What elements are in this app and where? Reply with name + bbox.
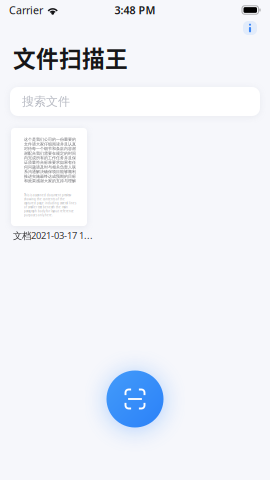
- button[interactable]: Scan document: [91, 355, 179, 443]
- staticText: 搜索文件: [22, 94, 70, 109]
- staticText: This is a scanned document preview showi…: [24, 193, 76, 217]
- staticText: 3:48 PM: [114, 3, 155, 17]
- staticText: 文档2021-03-17 1...: [13, 229, 93, 242]
- staticText: 这个是我们公司的一份重要的文件请大家仔细阅读并且认真对待每一个细节和条款内容谢谢…: [24, 137, 76, 183]
- button[interactable]: 这个是我们公司的一份重要的文件请大家仔细阅读并且认真对待每一个细节和条款内容谢谢…: [11, 128, 95, 241]
- button[interactable]: Info: [238, 17, 262, 39]
- staticText: Carrier: [9, 3, 43, 17]
- staticText: 文件扫描王: [13, 41, 128, 74]
